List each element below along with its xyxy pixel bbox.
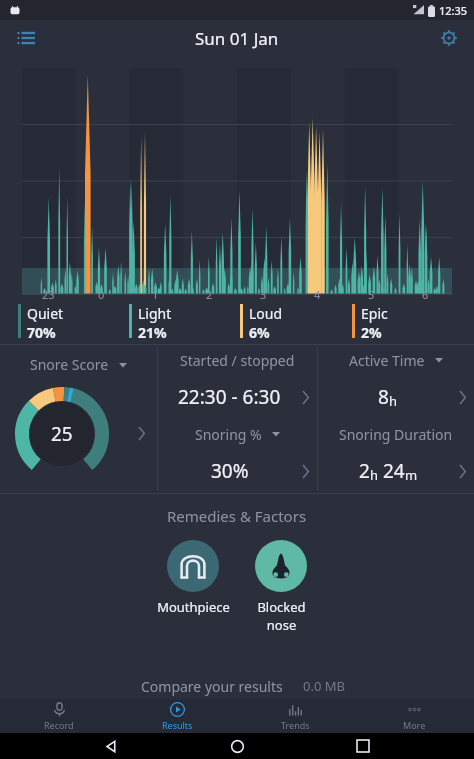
staticText: 1 [152,287,159,302]
staticText: Light [138,304,172,323]
button[interactable]: Blocked nose [241,540,321,634]
button[interactable]: Settings [434,23,464,53]
staticText: Compare your results [141,677,283,696]
staticText: 2 [359,458,370,484]
staticText: 6% [249,323,270,342]
button[interactable]: Home [222,733,252,759]
staticText: 2 [206,287,213,302]
button[interactable]: More [355,699,474,733]
button[interactable]: Trends [236,699,355,733]
button[interactable]: 30% [158,449,317,493]
button[interactable]: Epic [352,304,464,342]
button[interactable]: 2 [318,449,474,493]
button[interactable]: 8 [318,375,474,419]
staticText: Started / stopped [180,351,295,370]
staticText: 5 [368,287,375,302]
staticText: Results [162,719,193,731]
staticText: 8 [378,384,389,410]
button[interactable]: Back [96,733,126,759]
button[interactable]: Loud [240,304,352,342]
staticText: m [405,466,418,484]
staticText: Trends [281,719,310,731]
staticText: Snoring % [195,425,262,444]
button[interactable]: Quiet [18,304,129,342]
staticText: Active Time [349,351,425,370]
staticText: 4 [314,287,321,302]
staticText: 3 [260,287,267,302]
staticText: Mouthpiece [157,598,230,616]
staticText: h [370,466,379,484]
button[interactable]: Light [129,304,240,342]
staticText: 24 [383,458,405,484]
staticText: Sun 01 Jan [195,27,279,50]
staticText: 23 [42,287,55,302]
staticText: More [403,719,426,731]
staticText: h [389,392,398,410]
button[interactable]: 25 [14,386,110,482]
button[interactable]: Mouthpiece [153,540,233,616]
staticText: Epic [361,304,388,323]
staticText: 30% [211,458,249,484]
staticText: Record [44,719,74,731]
staticText: 70% [27,323,56,342]
button[interactable]: Recents [348,733,378,759]
staticText: 0 [98,287,105,302]
button[interactable]: Menu [10,22,42,54]
button[interactable]: Results [118,699,236,733]
staticText: Quiet [27,304,64,323]
staticText: 6 [422,287,429,302]
staticText: 0.0 MB [303,677,345,695]
staticText: Blocked nose [257,598,306,634]
button[interactable]: 22:30 - 6:30 [158,375,317,419]
staticText: Loud [249,304,283,323]
staticText: 22:30 - 6:30 [178,384,281,410]
staticText: 2% [361,323,382,342]
staticText: 12:35 [439,3,468,18]
button[interactable]: Compare your results [129,674,295,699]
staticText: Snoring Duration [339,425,453,444]
staticText: Snore Score [30,355,109,374]
staticText: Remedies & Factors [167,506,307,526]
staticText: 21% [138,323,167,342]
staticText: 25 [51,421,73,447]
button[interactable]: Record [0,699,118,733]
